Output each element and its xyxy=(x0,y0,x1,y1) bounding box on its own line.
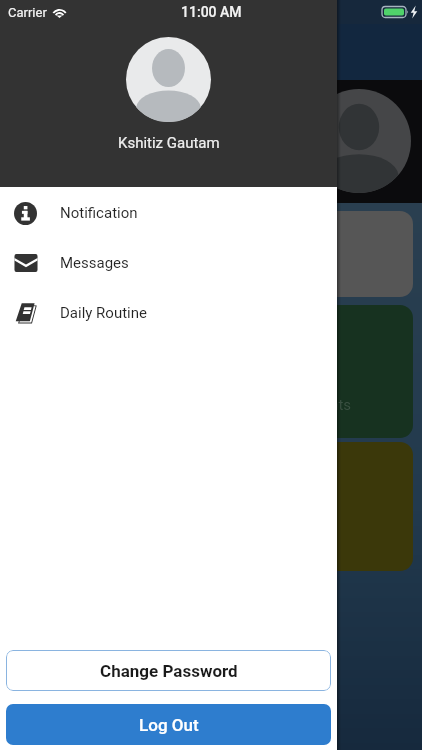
button[interactable]: Log Out xyxy=(6,704,331,745)
staticText: Kshitiz Gautam xyxy=(118,134,220,152)
button[interactable]: Change Password xyxy=(6,650,331,691)
staticText: Carrier xyxy=(8,5,47,20)
staticText: 11:00 AM xyxy=(181,4,242,20)
staticText: Daily Routine xyxy=(60,304,147,322)
staticText: Appointments xyxy=(257,396,352,414)
staticText: Log Out xyxy=(139,715,199,735)
staticText: Change Password xyxy=(100,661,238,681)
staticText: Messages xyxy=(60,254,129,272)
button[interactable]: Daily Routine xyxy=(0,288,337,338)
staticText: Notification xyxy=(60,204,138,222)
button[interactable]: Notification xyxy=(0,188,337,238)
button[interactable]: Messages xyxy=(0,238,337,288)
